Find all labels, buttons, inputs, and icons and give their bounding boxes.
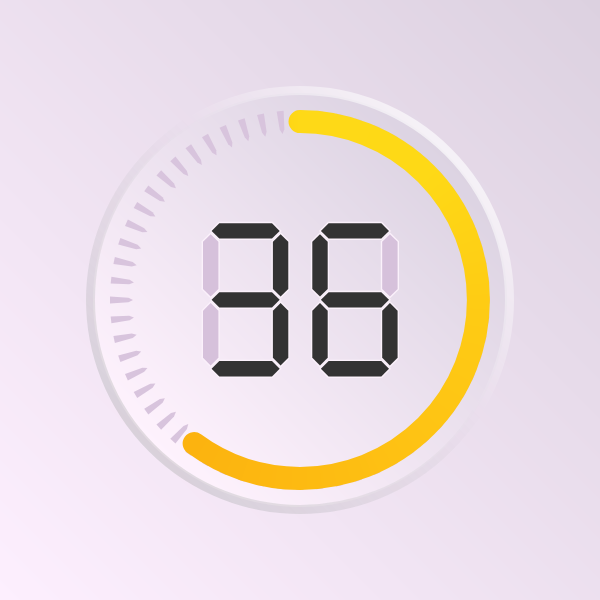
button[interactable]: Timer, 36 seconds remaining	[0, 0, 600, 600]
